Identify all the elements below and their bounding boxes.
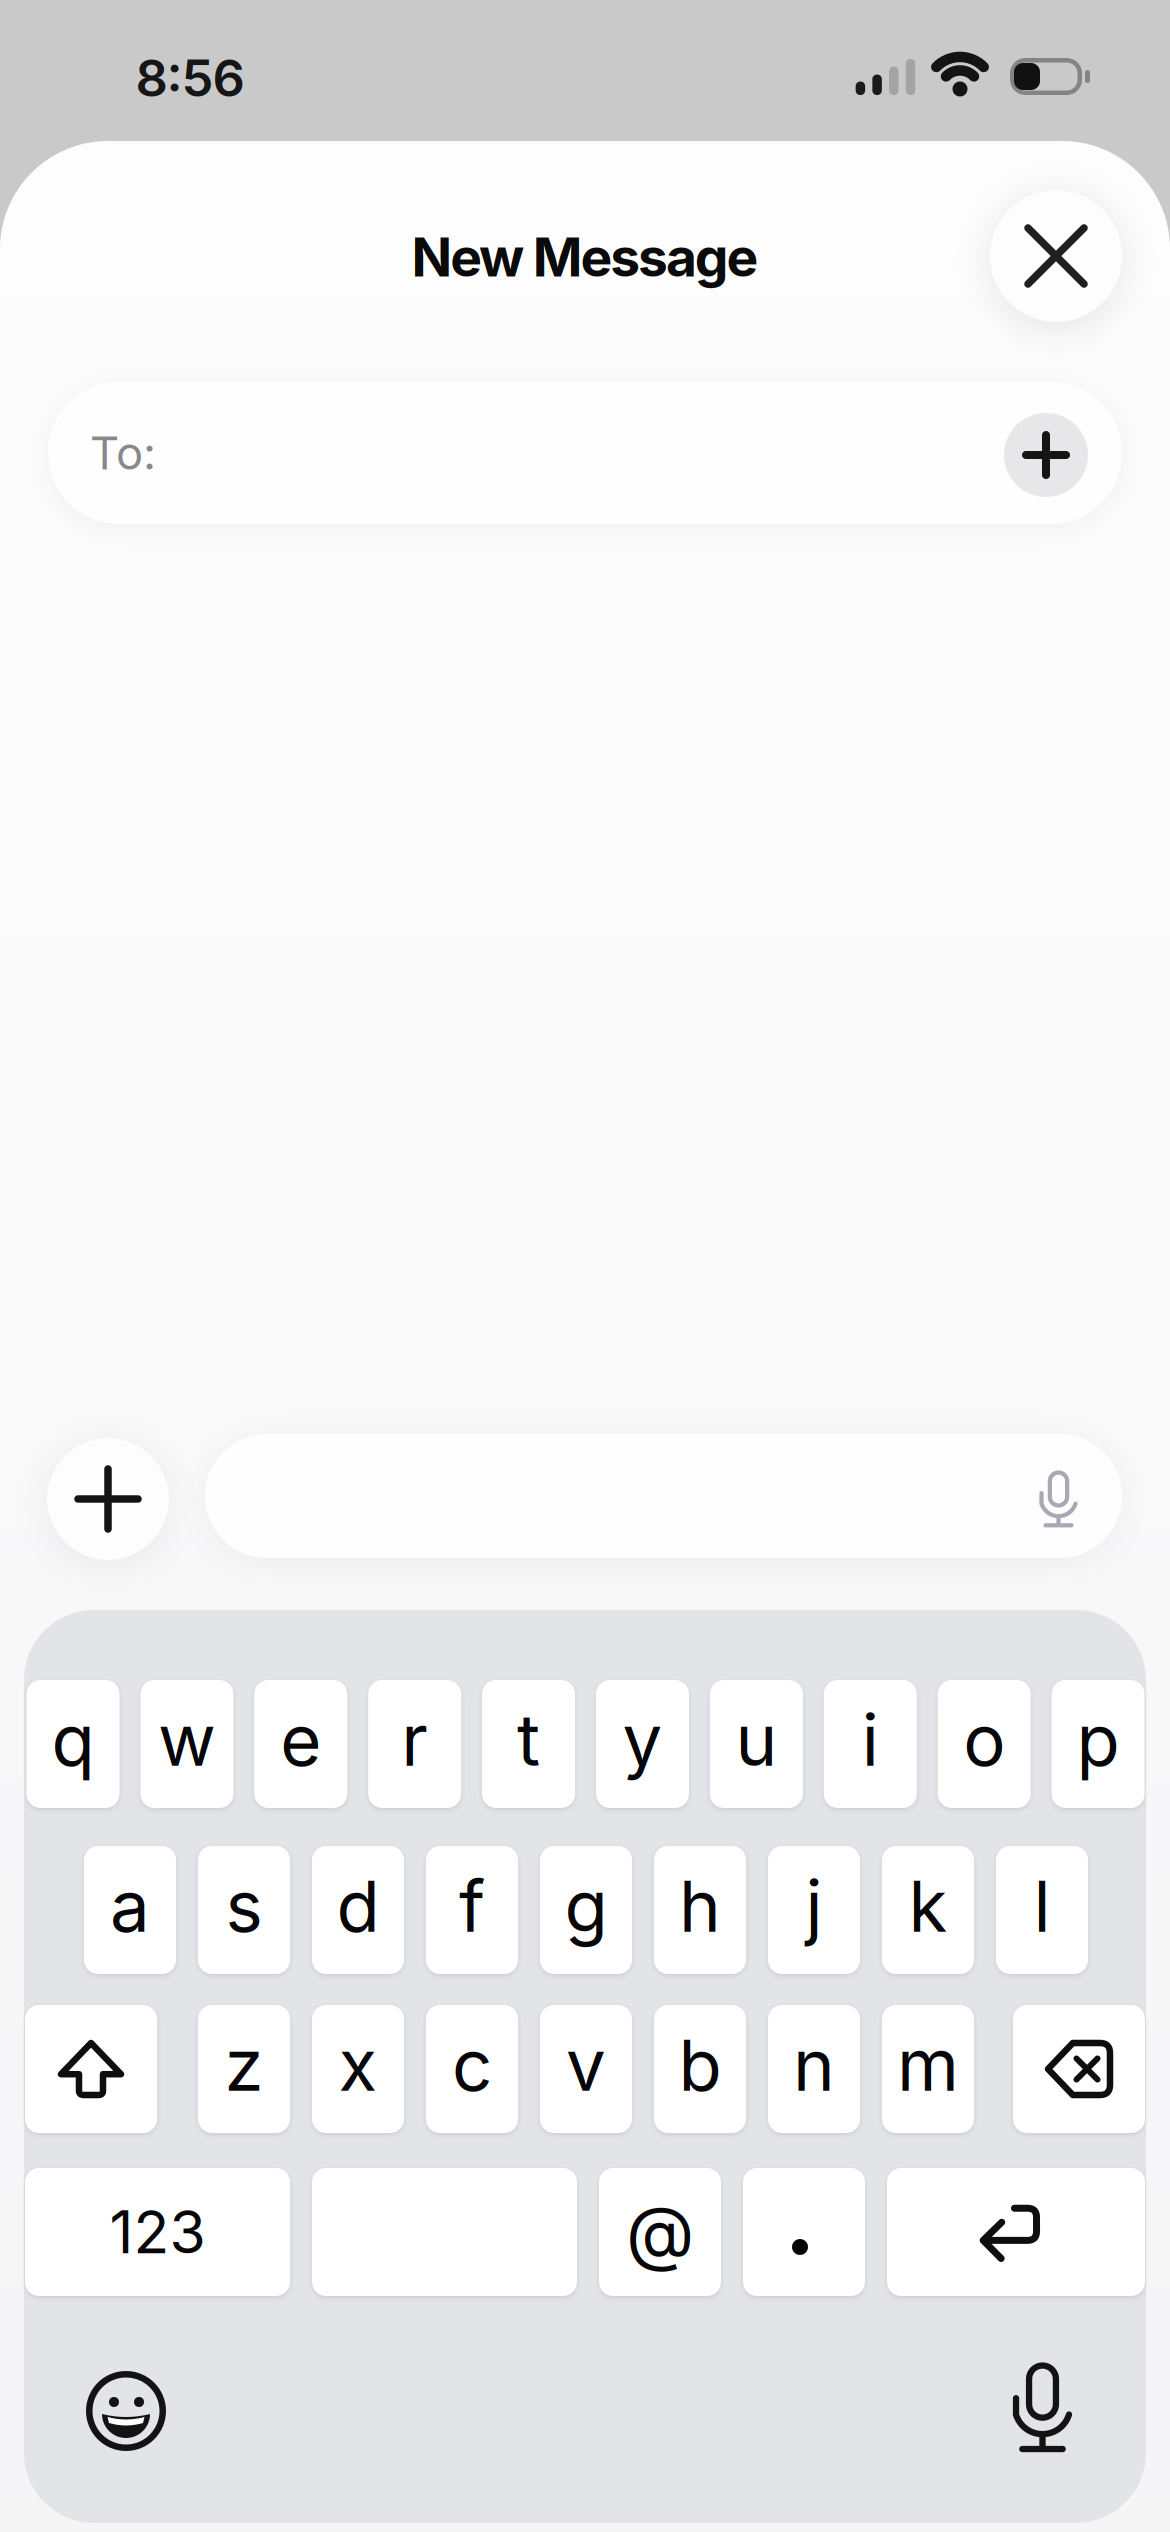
staticText: v [566,2022,606,2108]
button[interactable]: q [26,1680,119,1808]
button[interactable]: y [596,1680,689,1808]
button[interactable]: n [768,2005,860,2133]
staticText: r [401,1697,428,1783]
button[interactable]: j [768,1846,860,1974]
button[interactable]: z [198,2005,290,2133]
staticText: l [1033,1863,1050,1949]
button[interactable]: x [312,2005,404,2133]
button[interactable]: Close [990,190,1122,322]
button[interactable]: o [938,1680,1031,1808]
button[interactable]: g [540,1846,632,1974]
staticText: t [517,1697,540,1783]
button[interactable]: t [482,1680,575,1808]
staticText: z [224,2022,263,2108]
button[interactable]: r [368,1680,461,1808]
staticText: b [678,2022,721,2108]
staticText: j [805,1863,822,1949]
button[interactable]: u [710,1680,803,1808]
button[interactable]: h [654,1846,746,1974]
staticText: a [110,1863,150,1949]
staticText: q [51,1697,94,1783]
button[interactable]: 123 [25,2168,290,2296]
button[interactable]: k [882,1846,974,1974]
staticText: u [735,1697,777,1783]
button[interactable]: d [312,1846,404,1974]
button[interactable]: Return [887,2168,1145,2296]
staticText: y [622,1697,662,1783]
button[interactable]: m [882,2005,974,2133]
button[interactable]: e [254,1680,347,1808]
button[interactable]: Emoji [84,2369,168,2453]
button[interactable]: Shift [25,2005,157,2133]
staticText: n [793,2022,835,2108]
staticText: e [280,1697,321,1783]
staticText: x [338,2022,377,2108]
button[interactable]: p [1052,1680,1145,1808]
button[interactable]: @ [599,2168,721,2296]
staticText: New Message [411,225,758,289]
button[interactable]: Period [743,2168,865,2296]
button[interactable]: Delete [1013,2005,1145,2133]
staticText: p [1077,1697,1120,1783]
staticText: c [452,2022,492,2108]
button[interactable]: Dictate [1040,1472,1076,1527]
button[interactable]: b [654,2005,746,2133]
staticText: To: [90,426,156,480]
button[interactable]: w [140,1680,233,1808]
staticText: f [459,1863,485,1949]
button[interactable]: To [48,382,1122,524]
staticText: d [336,1863,379,1949]
staticText: 8:56 [135,47,244,109]
button[interactable]: s [198,1846,290,1974]
staticText: o [963,1697,1005,1783]
staticText: i [862,1697,879,1783]
button[interactable]: f [426,1846,518,1974]
staticText: w [158,1697,216,1783]
staticText: k [908,1863,947,1949]
button[interactable]: Dictation [1014,2365,1070,2452]
button[interactable]: v [540,2005,632,2133]
staticText: @ [626,2189,694,2275]
staticText: g [564,1863,607,1949]
button[interactable]: Apps [47,1438,169,1560]
button[interactable]: l [996,1846,1088,1974]
staticText: m [897,2022,959,2108]
button[interactable]: Add Contact [1004,413,1088,497]
button[interactable]: i [824,1680,917,1808]
button[interactable]: Message [205,1434,1122,1558]
button[interactable]: c [426,2005,518,2133]
staticText: h [679,1863,721,1949]
button[interactable]: a [84,1846,176,1974]
staticText: s [225,1863,262,1949]
staticText: 123 [109,2196,205,2267]
